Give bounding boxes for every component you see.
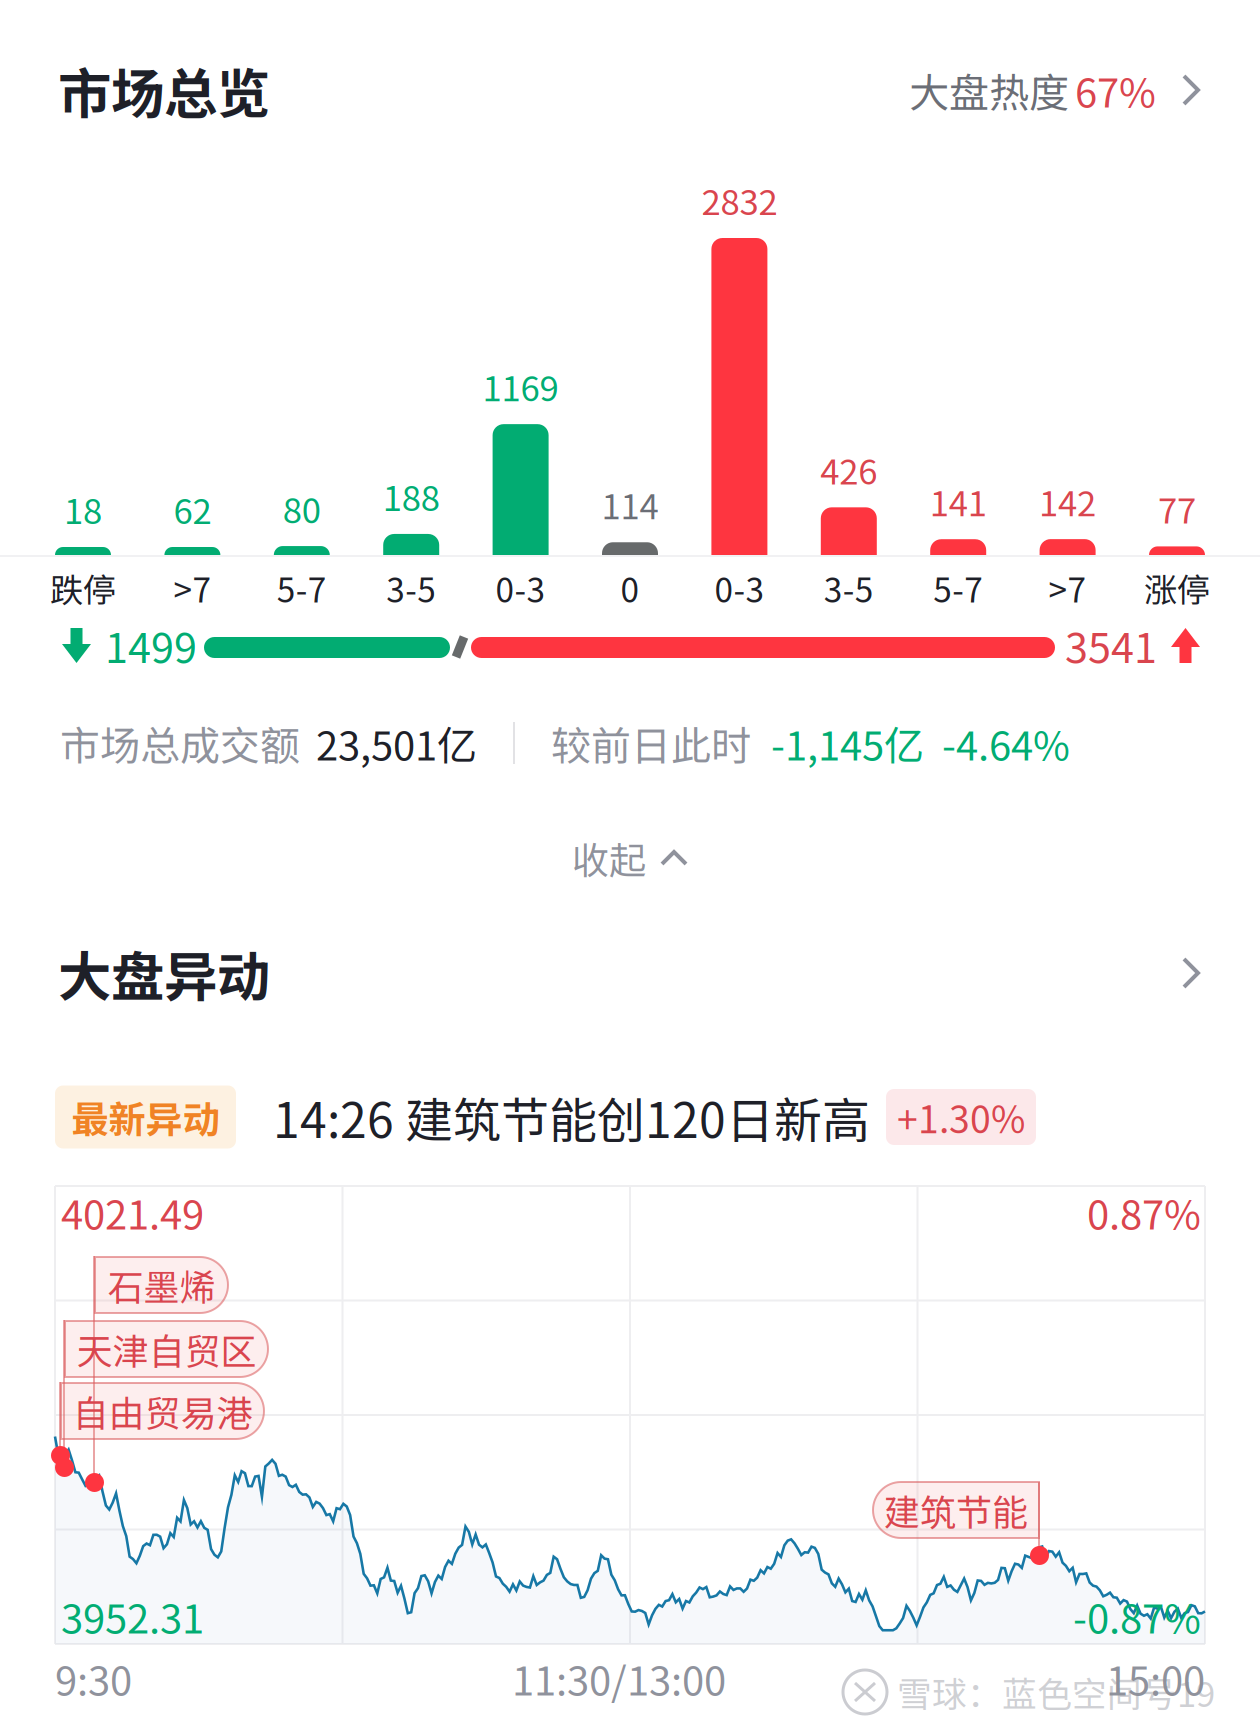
staticText: 14:26 建筑节能创120日新高 <box>273 1082 870 1152</box>
staticText: 142 <box>1039 476 1096 526</box>
staticText: 大盘异动 <box>58 934 270 1012</box>
staticText: 188 <box>383 471 440 521</box>
staticText: 天津自贸区 <box>76 1323 256 1375</box>
staticText: 80 <box>283 483 321 533</box>
staticText: 11:30/13:00 <box>512 1649 726 1707</box>
staticText: 跌停 <box>50 564 116 612</box>
staticText: >7 <box>173 564 211 612</box>
staticText: 1499 <box>105 615 197 675</box>
staticText: >7 <box>1049 564 1087 612</box>
staticText: 114 <box>601 479 658 529</box>
staticText: 67% <box>1075 61 1156 119</box>
staticText: 77 <box>1158 483 1196 533</box>
button[interactable]: 最新异动 <box>0 1082 1260 1152</box>
staticText: 5-7 <box>277 564 327 612</box>
staticText: 3-5 <box>824 564 874 612</box>
staticText: 141 <box>930 476 987 526</box>
staticText: 最新异动 <box>71 1090 219 1144</box>
staticText: 收起 <box>572 831 646 885</box>
staticText: 市场总成交额 <box>60 714 300 772</box>
staticText: 大盘热度 <box>909 61 1069 119</box>
staticText: 3541 <box>1065 615 1157 675</box>
button[interactable]: 盘中走势图 <box>55 1186 1205 1644</box>
staticText: 0 <box>620 564 639 612</box>
staticText: 0-3 <box>714 564 764 612</box>
staticText: 较前日此时 <box>551 714 751 772</box>
staticText: 雪球：蓝色空间号19 <box>897 1667 1215 1717</box>
staticText: +1.30% <box>897 1090 1025 1144</box>
staticText: 0.87% <box>1087 1183 1201 1241</box>
staticText: 3-5 <box>386 564 436 612</box>
staticText: 建筑节能 <box>884 1484 1028 1536</box>
staticText: 9:30 <box>55 1649 132 1707</box>
staticText: 23,501亿 <box>316 714 477 772</box>
staticText: 2832 <box>701 175 777 225</box>
button[interactable]: 大盘异动 <box>0 938 1260 1008</box>
staticText: 涨停 <box>1144 564 1210 612</box>
staticText: 石墨烯 <box>107 1259 215 1311</box>
staticText: 5-7 <box>933 564 983 612</box>
staticText: 市场总览 <box>58 51 270 129</box>
staticText: 62 <box>173 484 211 534</box>
staticText: 426 <box>820 444 877 494</box>
staticText: 3952.31 <box>61 1587 204 1645</box>
staticText: 18 <box>64 484 102 534</box>
staticText: 4021.49 <box>61 1183 204 1241</box>
staticText: 自由贸易港 <box>72 1385 252 1437</box>
button[interactable]: 收起 <box>0 826 1260 890</box>
staticText: -4.64% <box>942 714 1070 772</box>
staticText: 1169 <box>483 361 559 411</box>
staticText: 15:00 <box>1106 1649 1205 1707</box>
staticText: -1,145亿 <box>771 714 924 772</box>
staticText: 0-3 <box>496 564 546 612</box>
button[interactable]: 市场总览 <box>0 35 1260 145</box>
staticText: -0.87% <box>1073 1587 1201 1645</box>
